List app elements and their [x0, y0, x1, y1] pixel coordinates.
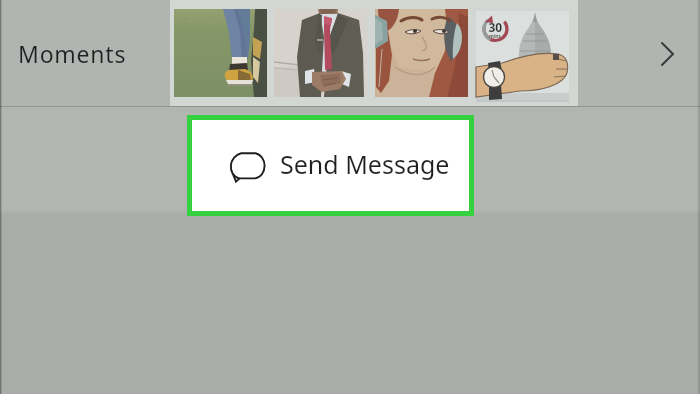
- button[interactable]: Moment 3: [375, 9, 468, 97]
- button[interactable]: Moment 4: [476, 11, 569, 100]
- button[interactable]: Moment 2: [274, 9, 367, 97]
- button[interactable]: Moment 1: [174, 9, 267, 97]
- staticText: Send Message: [280, 147, 450, 181]
- staticText: Moments: [18, 38, 127, 69]
- button[interactable]: Moments: [18, 38, 127, 69]
- button[interactable]: More moments: [650, 32, 694, 76]
- button[interactable]: Send Message: [187, 115, 474, 216]
